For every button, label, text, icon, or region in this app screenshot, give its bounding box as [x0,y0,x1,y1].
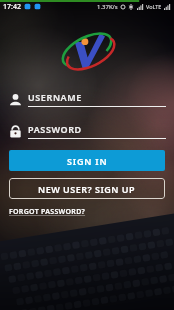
staticText: 17:42 [3,2,21,12]
button[interactable]: SIGN IN [9,150,165,171]
staticText: USERNAME [28,91,82,103]
staticText: PASSWORD [28,123,82,135]
staticText: VoLTE [146,3,162,10]
button[interactable]: NEW USER? SIGN UP [9,178,165,199]
staticText: SIGN IN [67,155,108,167]
button[interactable]: USERNAME [2,91,166,107]
button[interactable]: PASSWORD [2,123,166,139]
staticText: FORGOT PASSWORD? [9,207,86,217]
button[interactable]: FORGOT PASSWORD? [9,206,86,218]
staticText: 1.37K/s [97,3,118,11]
staticText: NEW USER? SIGN UP [38,183,136,195]
